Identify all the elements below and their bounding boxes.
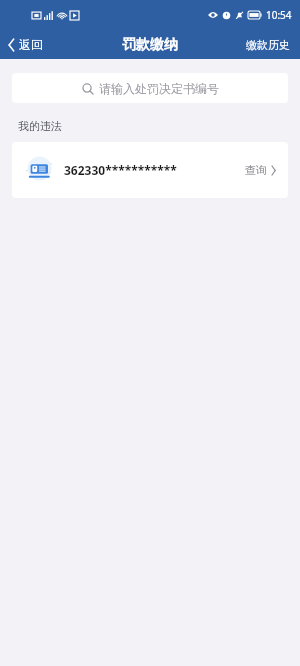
staticText: 10:54 — [266, 8, 292, 22]
button[interactable]: 身份证 — [12, 142, 288, 198]
staticText: 缴款历史 — [246, 38, 290, 52]
button[interactable]: 返回 — [0, 33, 51, 56]
button[interactable]: 请输入处罚决定书编号 — [12, 73, 288, 103]
staticText: 查询 — [245, 163, 267, 177]
other: 身份证 — [24, 157, 54, 183]
staticText: 请输入处罚决定书编号 — [99, 81, 219, 96]
staticText: 返回 — [19, 37, 43, 52]
staticText: 罚款缴纳 — [122, 36, 178, 54]
staticText: 362330*********** — [64, 162, 177, 178]
staticText: 我的违法 — [18, 119, 62, 133]
button[interactable]: 缴款历史 — [236, 34, 300, 56]
